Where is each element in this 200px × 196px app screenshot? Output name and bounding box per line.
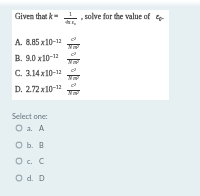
staticText: 10	[45, 85, 53, 94]
staticText: b.	[27, 141, 33, 150]
staticText: .	[162, 12, 164, 21]
staticText: =	[54, 12, 59, 21]
staticText: −12	[53, 84, 62, 90]
staticText: 3.14	[26, 69, 40, 78]
staticText: N m²	[67, 44, 80, 50]
staticText: C	[39, 157, 44, 166]
staticText: x	[38, 54, 42, 63]
staticText: A.	[15, 38, 23, 47]
staticText: −12	[50, 53, 59, 59]
staticText: x	[41, 69, 45, 78]
staticText: B.	[15, 54, 23, 63]
staticText: 4π ε₀	[64, 19, 77, 25]
staticText: d.	[27, 174, 33, 183]
button[interactable]: b.	[14, 138, 60, 153]
staticText: A	[39, 124, 45, 133]
staticText: D.	[15, 85, 23, 94]
staticText: , solve for the value of	[81, 12, 151, 21]
staticText: 9.0	[26, 54, 36, 63]
staticText: N m²	[67, 44, 80, 50]
staticText: 2.72	[26, 85, 40, 94]
staticText: x	[38, 54, 42, 63]
staticText: 10	[45, 69, 53, 78]
staticText: k	[49, 12, 53, 21]
staticText: ε₀	[156, 12, 162, 21]
staticText: x	[41, 38, 45, 47]
staticText: x	[41, 69, 45, 78]
staticText: 10	[45, 69, 53, 78]
staticText: Select one:	[12, 112, 48, 121]
staticText: x	[41, 38, 45, 47]
staticText: 1	[64, 11, 77, 17]
staticText: , solve for the value of	[81, 12, 151, 21]
staticText: 9.0	[26, 54, 36, 63]
staticText: C.	[15, 69, 23, 78]
staticText: −12	[53, 69, 62, 75]
staticText: c²	[67, 67, 80, 73]
button[interactable]: c.	[14, 154, 60, 169]
staticText: ε₀	[156, 12, 162, 21]
staticText: 4π ε₀	[64, 19, 77, 25]
staticText: N m²	[67, 59, 80, 65]
staticText: c²	[67, 82, 80, 88]
staticText: −12	[53, 69, 62, 75]
staticText: 10	[45, 85, 53, 94]
staticText: C.	[15, 69, 23, 78]
staticText: N m²	[67, 90, 80, 96]
staticText: −12	[53, 38, 62, 44]
staticText: N m²	[67, 75, 80, 81]
staticText: N m²	[67, 90, 80, 96]
staticText: N m²	[67, 59, 80, 65]
staticText: c²	[67, 67, 80, 73]
staticText: =	[54, 12, 59, 21]
staticText: c²	[67, 36, 80, 42]
staticText: 2.72	[26, 85, 40, 94]
staticText: c²	[67, 82, 80, 88]
staticText: D.	[15, 85, 23, 94]
staticText: 10	[42, 54, 50, 63]
staticText: k	[49, 12, 53, 21]
staticText: D	[39, 174, 45, 183]
staticText: B.	[15, 54, 23, 63]
staticText: x	[41, 85, 45, 94]
button[interactable]: a.	[14, 121, 60, 136]
staticText: a.	[27, 124, 33, 133]
staticText: c²	[67, 51, 80, 57]
staticText: −12	[53, 84, 62, 90]
staticText: 8.85	[26, 38, 40, 47]
staticText: Given that	[15, 12, 48, 21]
button[interactable]: d.	[14, 171, 60, 186]
staticText: c.	[27, 157, 33, 166]
staticText: B	[39, 141, 44, 150]
staticText: −12	[50, 53, 59, 59]
staticText: 8.85	[26, 38, 40, 47]
staticText: x	[41, 85, 45, 94]
staticText: Given that	[15, 12, 48, 21]
staticText: .	[162, 12, 164, 21]
staticText: A.	[15, 38, 23, 47]
staticText: c²	[67, 36, 80, 42]
staticText: 10	[42, 54, 50, 63]
staticText: 3.14	[26, 69, 40, 78]
staticText: −12	[53, 38, 62, 44]
staticText: 10	[45, 38, 53, 47]
staticText: 1	[64, 11, 77, 17]
staticText: 10	[45, 38, 53, 47]
staticText: c²	[67, 51, 80, 57]
staticText: N m²	[67, 75, 80, 81]
